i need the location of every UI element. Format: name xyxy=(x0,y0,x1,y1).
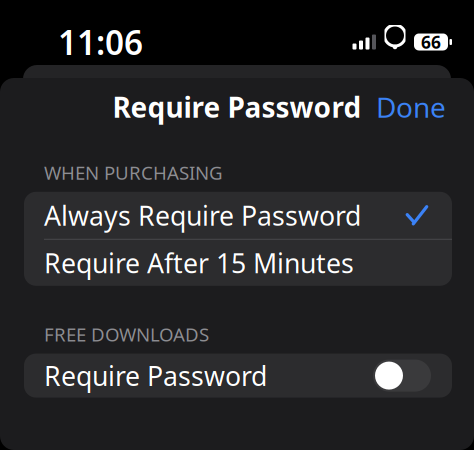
staticText: Require Password xyxy=(112,88,361,126)
staticText: Always Require Password xyxy=(44,198,361,233)
staticText: Require After 15 Minutes xyxy=(44,245,354,280)
staticText: WHEN PURCHASING xyxy=(44,160,223,185)
button[interactable]: Done xyxy=(372,82,450,132)
button[interactable]: Require After 15 Minutes xyxy=(24,240,452,286)
staticText: 66 xyxy=(421,30,441,53)
staticText: Done xyxy=(376,88,446,126)
button[interactable]: Always Require Password xyxy=(24,192,452,239)
staticText: Require Password xyxy=(44,358,267,393)
staticText: 11:06 xyxy=(58,20,143,64)
button[interactable]: Require Password xyxy=(24,354,452,398)
staticText: FREE DOWNLOADS xyxy=(44,322,209,347)
